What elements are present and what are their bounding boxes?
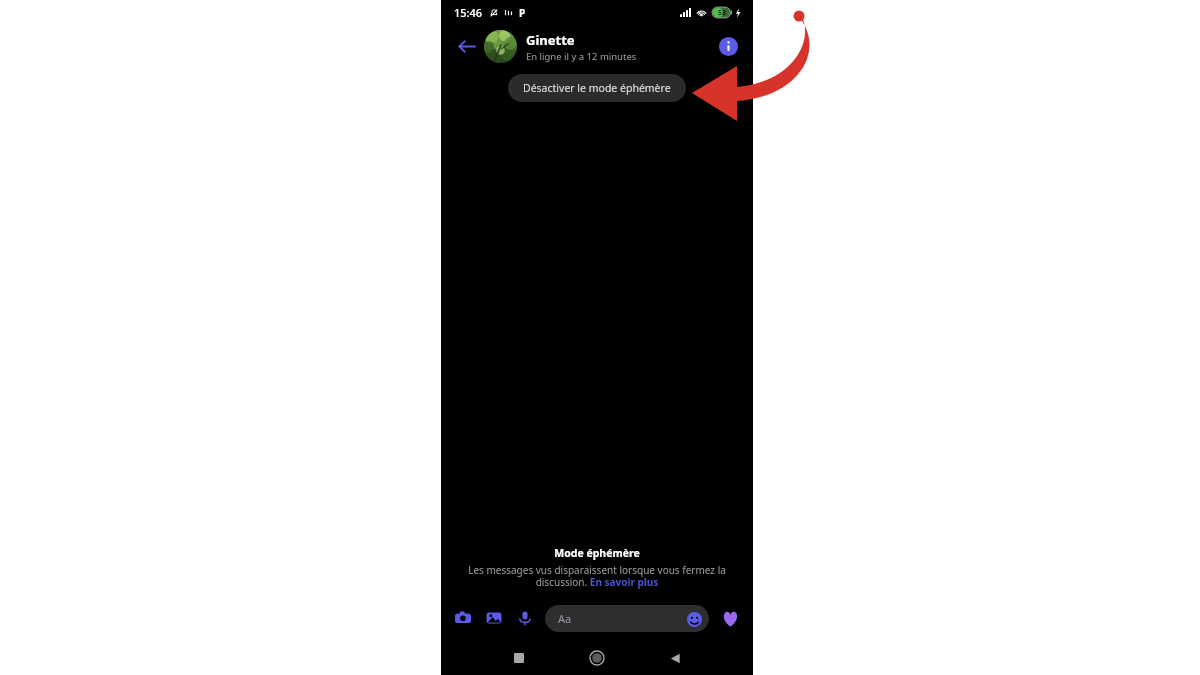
button[interactable]: Applications récentes (504, 643, 534, 673)
staticText: Ginette (526, 31, 575, 49)
staticText: 15:46 (454, 5, 483, 20)
button[interactable]: Désactiver le mode éphémère (508, 74, 686, 102)
staticText: Désactiver le mode éphémère (523, 81, 671, 95)
button[interactable]: Envoyer un j'aime (717, 605, 743, 631)
staticText: Les messages vus disparaissent lorsque v… (459, 563, 735, 589)
button[interactable]: Back (451, 31, 481, 61)
button[interactable]: Emoji (685, 610, 703, 628)
staticText: 58 (718, 8, 727, 18)
button[interactable]: Micro (513, 606, 537, 630)
staticText: P (519, 6, 526, 20)
button[interactable]: Appareil photo (451, 606, 475, 630)
button[interactable]: Aa (545, 605, 709, 632)
staticText: Mode éphémère (554, 546, 640, 560)
staticText: Aa (558, 611, 572, 626)
button[interactable]: Retour (660, 643, 690, 673)
button[interactable]: Informations (713, 31, 743, 61)
button[interactable]: Galerie (482, 606, 506, 630)
button[interactable]: Accueil (582, 643, 612, 673)
button[interactable]: Ginette (484, 30, 713, 63)
staticText: En ligne il y a 12 minutes (526, 50, 637, 63)
